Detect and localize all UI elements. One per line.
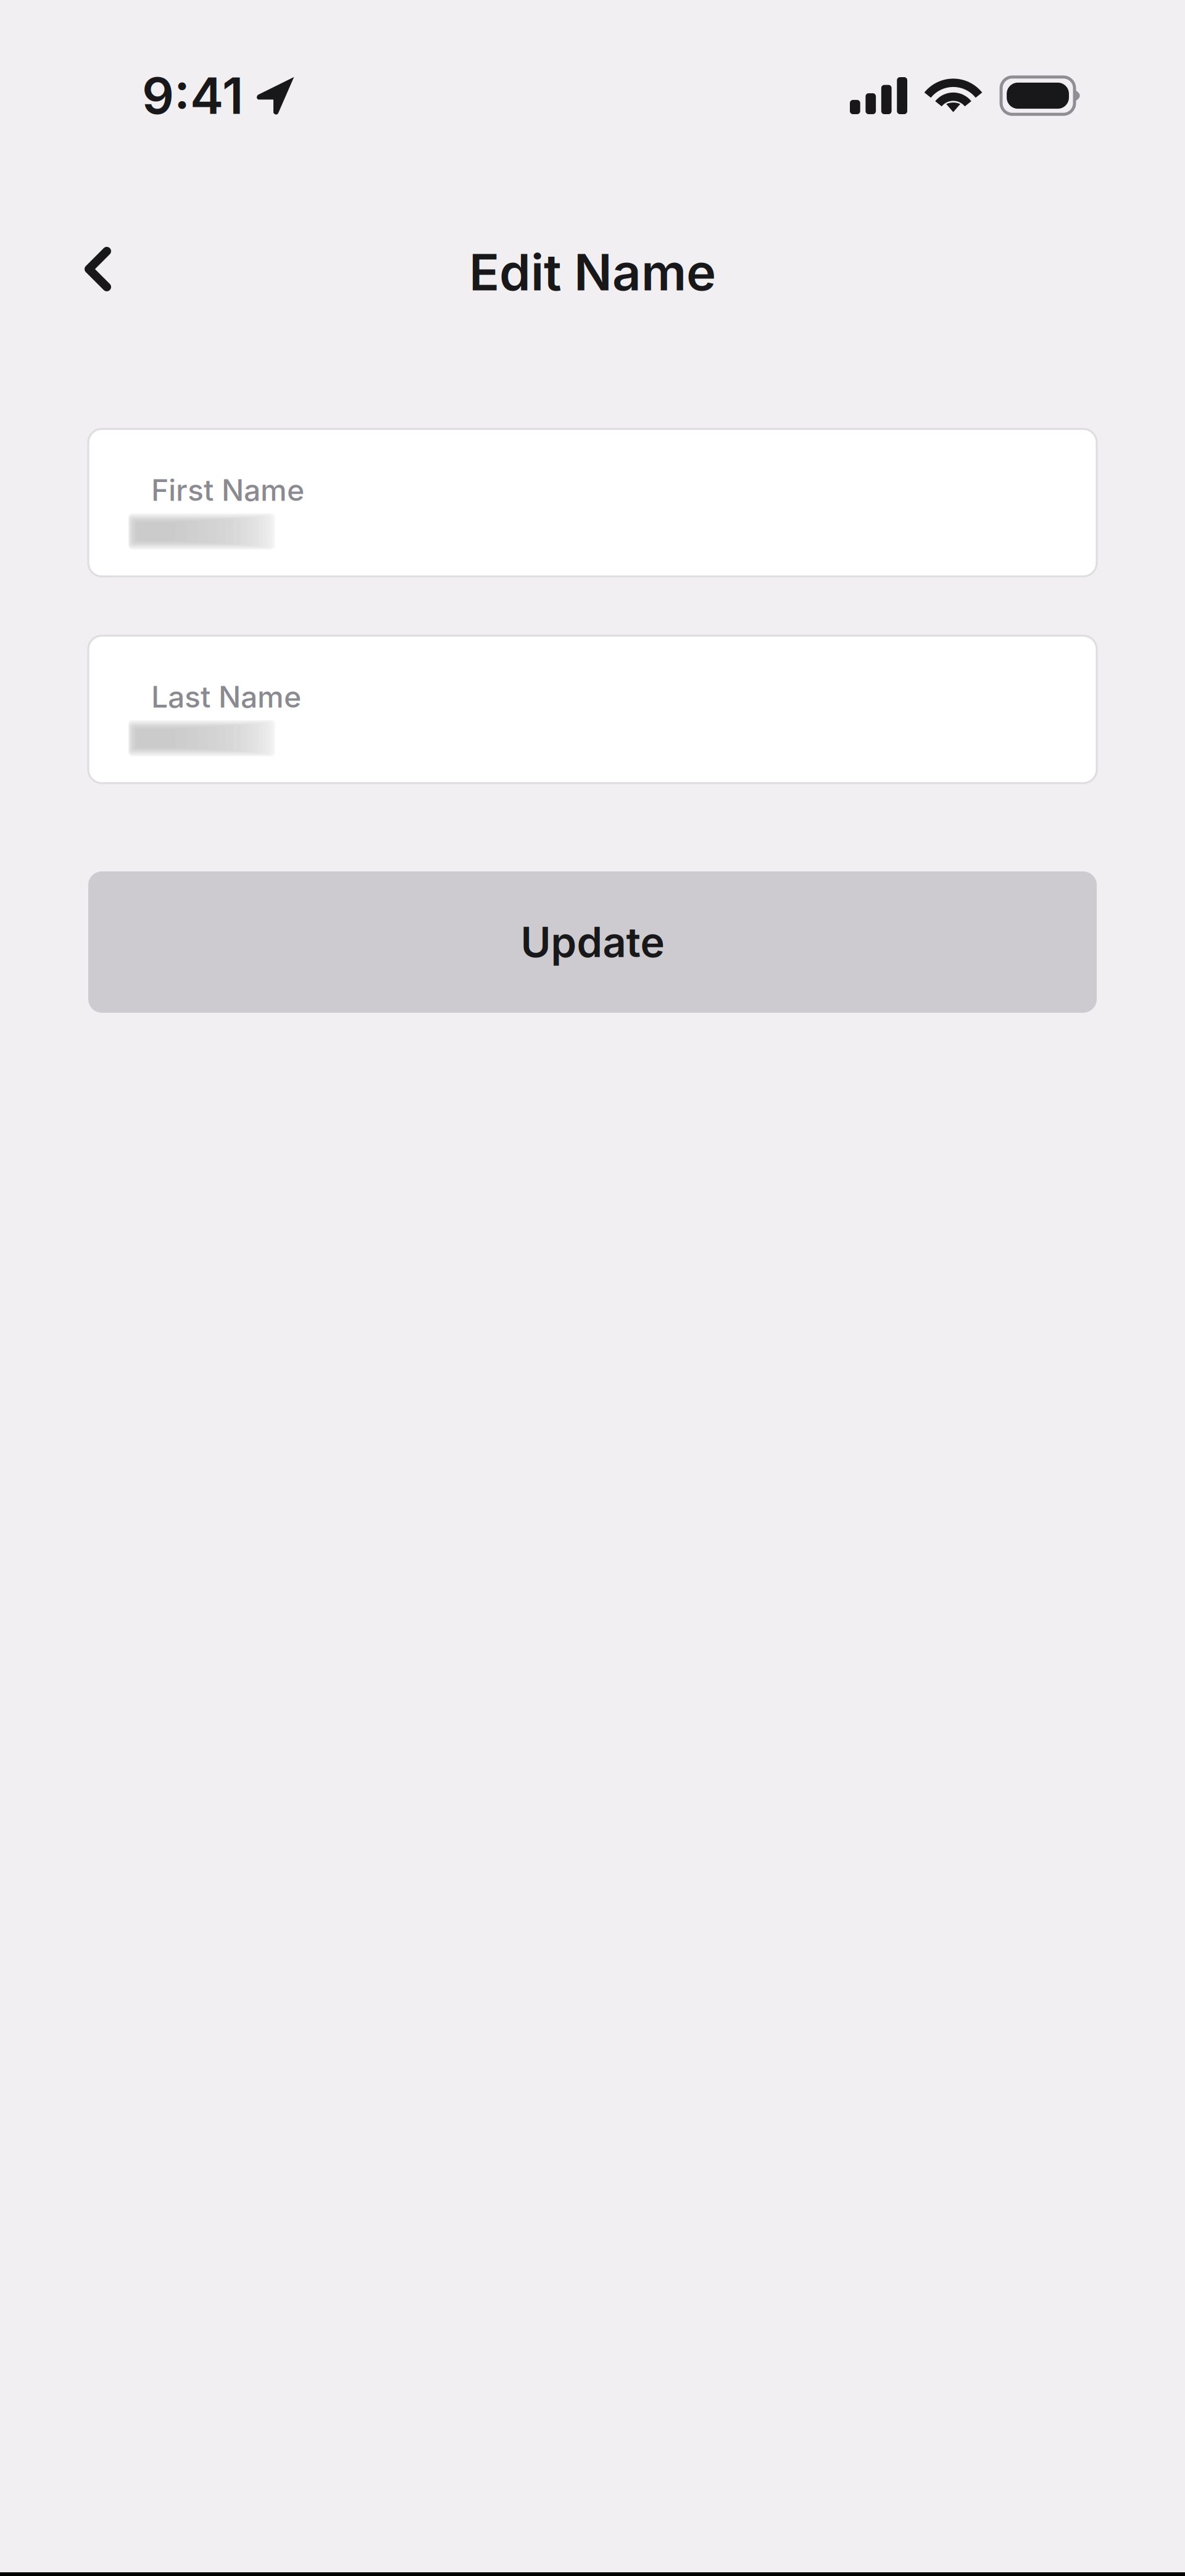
staticText: Update <box>521 917 664 967</box>
staticText: First Name <box>151 472 304 508</box>
button[interactable]: First Name <box>88 429 1097 576</box>
staticText: Last Name <box>151 679 301 715</box>
staticText: Edit Name <box>469 242 716 303</box>
button[interactable]: Back <box>57 229 138 309</box>
staticText: 9:41 <box>142 65 243 126</box>
button[interactable]: Last Name <box>88 636 1097 783</box>
button[interactable]: Update <box>88 871 1097 1013</box>
